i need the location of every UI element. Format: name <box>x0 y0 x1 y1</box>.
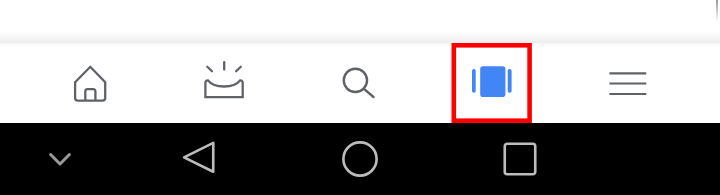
button[interactable]: Books <box>427 43 562 123</box>
button[interactable]: Back <box>120 123 280 195</box>
button[interactable]: More options <box>562 43 697 123</box>
button[interactable]: Recent apps <box>440 123 600 195</box>
button[interactable]: Home <box>280 123 440 195</box>
button[interactable]: Home <box>23 43 157 123</box>
button[interactable]: Hide keyboard <box>20 123 100 195</box>
button[interactable]: Search <box>292 43 427 123</box>
button[interactable]: Updates <box>157 43 292 123</box>
